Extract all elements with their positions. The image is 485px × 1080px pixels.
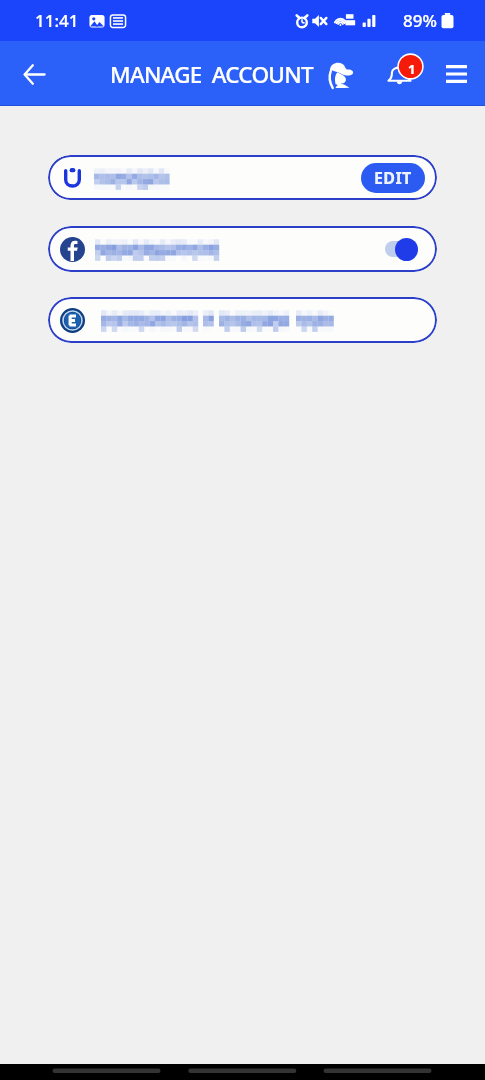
button[interactable]: EDIT — [361, 163, 425, 193]
button[interactable]: Back — [11, 51, 57, 97]
staticText: 11:41 — [35, 9, 79, 32]
staticText: 1 — [408, 60, 416, 78]
staticText: MANAGE ACCOUNT — [110, 59, 313, 90]
staticText: 89% — [403, 9, 437, 32]
button[interactable]: Menu — [434, 52, 478, 96]
button[interactable]: Toggle Facebook link — [48, 226, 437, 272]
staticText: EDIT — [374, 167, 412, 189]
button[interactable]: Toggle Facebook link — [385, 237, 413, 261]
button[interactable]: Profile — [318, 52, 362, 96]
button[interactable]: EDIT — [48, 155, 437, 200]
button[interactable]: Notifications — [376, 51, 422, 97]
button[interactable] — [48, 297, 437, 343]
